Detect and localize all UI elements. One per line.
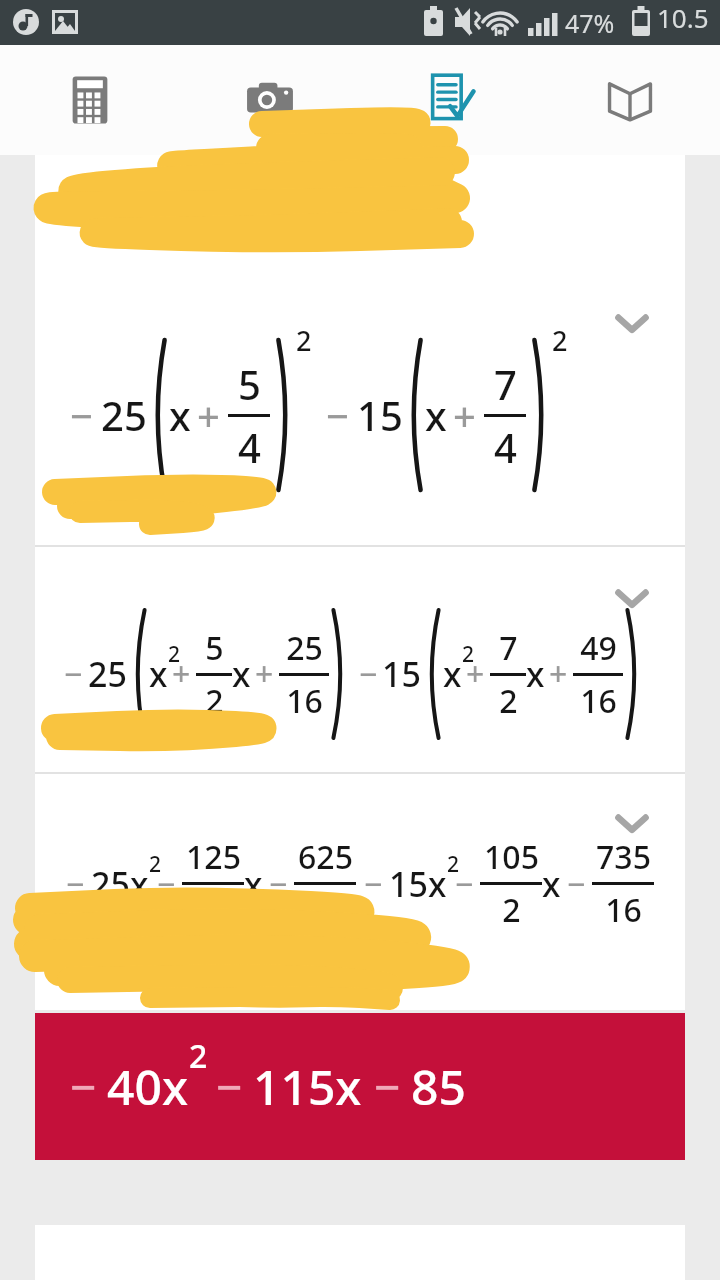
staticText: 16 [307, 888, 344, 932]
button[interactable]: Calculator [0, 45, 180, 155]
staticText: 15 [389, 861, 428, 907]
staticText: 5 [205, 626, 224, 670]
button[interactable]: Solve steps [360, 45, 540, 155]
staticText: 16 [605, 888, 642, 932]
staticText: x [443, 651, 462, 697]
staticText: 10.57 [657, 0, 720, 45]
staticText: x [232, 651, 251, 697]
staticText: − [359, 652, 378, 696]
staticText: 47% [565, 6, 615, 40]
staticText: + [549, 652, 568, 696]
staticText: x [169, 388, 191, 442]
staticText: 2 [447, 850, 460, 879]
staticText: x [428, 861, 447, 907]
staticText: − [70, 388, 93, 442]
staticText: 4 [494, 420, 517, 474]
staticText: 735 [596, 835, 651, 879]
staticText: 2 [552, 322, 568, 359]
staticText: 2 [502, 888, 521, 932]
staticText: − [374, 1055, 401, 1118]
staticText: + [197, 388, 220, 442]
staticText: − [269, 862, 288, 906]
staticText: 40x [107, 1054, 188, 1119]
staticText: 16 [580, 679, 617, 723]
staticText: − [326, 388, 349, 442]
staticText: − [567, 862, 586, 906]
staticText: 85 [411, 1054, 466, 1119]
staticText: − [64, 652, 83, 696]
staticText: 25 [286, 626, 323, 670]
button[interactable]: Expand step [604, 295, 660, 351]
staticText: + [255, 652, 274, 696]
staticText: x [425, 388, 447, 442]
staticText: 2 [168, 640, 181, 669]
button[interactable]: Textbook [540, 45, 720, 155]
staticText: − [216, 1055, 243, 1118]
staticText: − [66, 862, 85, 906]
button[interactable]: Camera [180, 45, 360, 155]
staticText: 5 [238, 357, 261, 411]
staticText: 25 [91, 861, 130, 907]
staticText: 4 [238, 420, 261, 474]
staticText: x [244, 861, 263, 907]
staticText: 115x [253, 1054, 362, 1119]
staticText: 49 [580, 626, 617, 670]
staticText: 2 [205, 679, 224, 723]
staticText: 25 [101, 388, 147, 442]
staticText: x [526, 651, 545, 697]
staticText: 15 [382, 651, 421, 697]
staticText: + [466, 652, 485, 696]
staticText: x [149, 651, 168, 697]
staticText: 2 [189, 1034, 208, 1078]
staticText: 25 [88, 651, 127, 697]
button[interactable]: − [35, 1013, 685, 1160]
staticText: 7 [494, 357, 517, 411]
button[interactable]: Expand step [604, 795, 660, 851]
staticText: 105 [484, 835, 539, 879]
staticText: − [455, 862, 474, 906]
staticText: − [364, 862, 383, 906]
staticText: 2 [149, 850, 162, 879]
staticText: 7 [499, 626, 518, 670]
button[interactable]: Expand step [604, 570, 660, 626]
staticText: 2 [499, 679, 518, 723]
staticText: 625 [298, 835, 353, 879]
staticText: + [453, 388, 476, 442]
staticText: 15 [357, 388, 403, 442]
staticText: x [542, 861, 561, 907]
staticText: 125 [186, 835, 241, 879]
staticText: 2 [462, 640, 475, 669]
staticText: 2 [296, 322, 312, 359]
staticText: 16 [286, 679, 323, 723]
staticText: − [70, 1055, 97, 1118]
staticText: − [157, 862, 176, 906]
staticText: + [172, 652, 191, 696]
staticText: x [130, 861, 149, 907]
